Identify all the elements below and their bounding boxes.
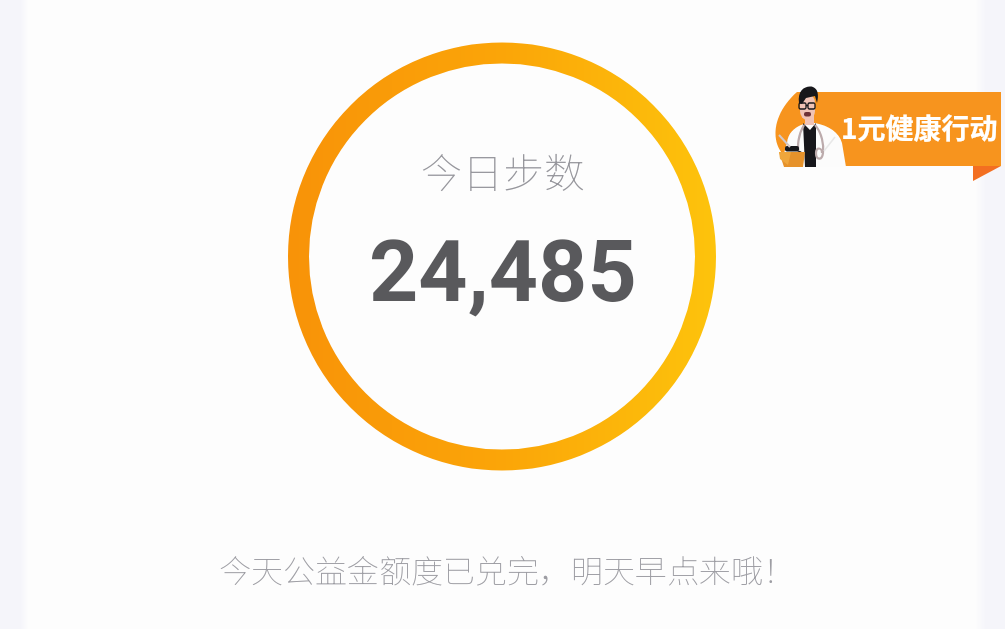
button[interactable]: 今日步数 24,485 [288,43,716,471]
staticText: 24,485 [369,221,637,322]
button[interactable]: 1元健康行动 活动入口 [765,85,1001,185]
staticText: 今天公益金额度已兑完，明天早点来哦！ [219,546,796,592]
staticText: 1元健康行动 [841,107,998,148]
staticText: 今日步数 [421,140,585,199]
